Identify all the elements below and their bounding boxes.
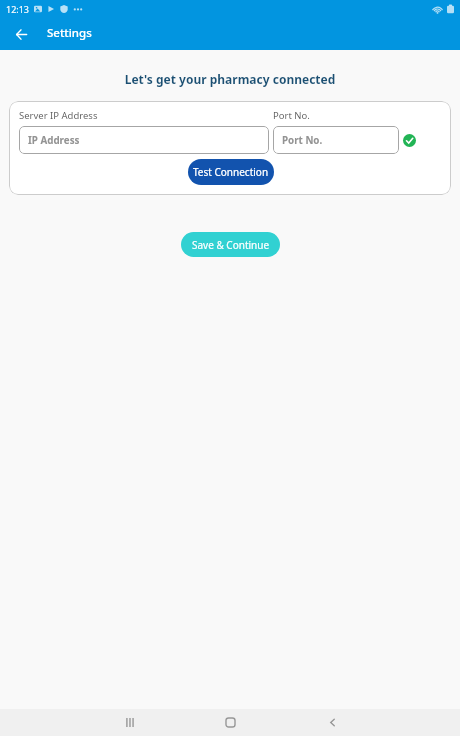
- button[interactable]: Test Connection: [188, 159, 274, 185]
- button[interactable]: Back: [0, 18, 42, 50]
- staticText: Port No.: [282, 134, 323, 147]
- button[interactable]: Port No.: [273, 126, 399, 154]
- button[interactable]: Save & Continue: [181, 232, 280, 257]
- staticText: IP Address: [28, 134, 80, 147]
- staticText: Port No.: [273, 109, 310, 122]
- staticText: Test Connection: [193, 165, 269, 179]
- button[interactable]: Home: [209, 709, 251, 736]
- button[interactable]: IP Address: [19, 126, 269, 154]
- staticText: Server IP Address: [19, 109, 98, 122]
- staticText: Save & Continue: [192, 238, 270, 252]
- staticText: Let's get your pharmacy connected: [0, 71, 460, 87]
- staticText: Settings: [47, 25, 92, 41]
- staticText: 12:13: [6, 3, 30, 15]
- button[interactable]: Back: [311, 709, 353, 736]
- button[interactable]: Recent apps: [108, 709, 150, 736]
